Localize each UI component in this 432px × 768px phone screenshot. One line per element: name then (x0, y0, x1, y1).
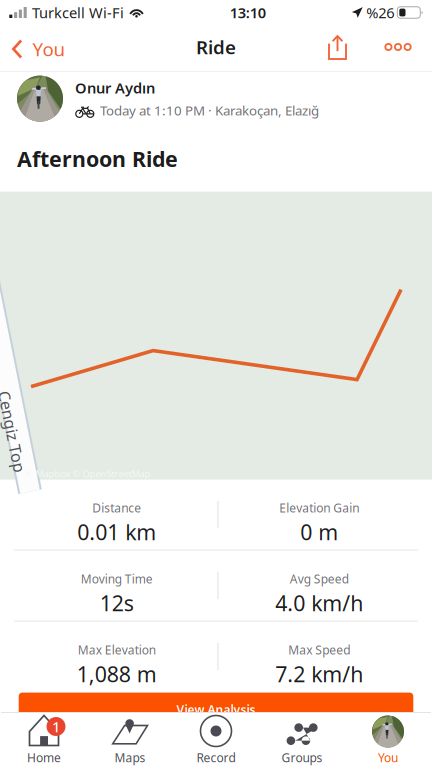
staticText: 13:10 (230, 3, 266, 22)
staticText: Cengiz Top (0, 421, 53, 442)
staticText: Onur Aydın (75, 78, 155, 97)
staticText: Maps (114, 749, 145, 765)
button[interactable]: More options (376, 24, 420, 70)
button[interactable]: You (0, 26, 75, 72)
staticText: Groups (281, 749, 322, 765)
staticText: Moving Time (81, 571, 153, 587)
staticText: 7.2 km/h (275, 660, 363, 688)
staticText: Ride (196, 35, 236, 59)
staticText: Today at 1:10 PM · Karakoçan, Elazığ (100, 101, 319, 119)
staticText: 12s (100, 589, 134, 617)
staticText: 1,088 m (77, 660, 157, 688)
staticText: 0.01 km (77, 518, 156, 546)
staticText: Max Elevation (78, 642, 156, 658)
staticText: 1 (52, 717, 60, 736)
staticText: %26 (366, 3, 394, 22)
staticText: Turkcell Wi-Fi (32, 3, 124, 22)
button[interactable]: Record (173, 712, 259, 768)
staticText: Distance (92, 500, 141, 516)
button[interactable]: Maps (87, 712, 173, 768)
button[interactable]: View Analysis (19, 693, 413, 735)
staticText: View Analysis (176, 702, 255, 717)
staticText: Afternoon Ride (17, 144, 178, 173)
staticText: Home (27, 749, 61, 765)
staticText: Avg Speed (290, 571, 349, 587)
button[interactable]: Groups (259, 712, 345, 768)
staticText: Elevation Gain (279, 500, 359, 516)
staticText: Record (196, 749, 235, 765)
staticText: You (32, 37, 65, 61)
staticText: Max Speed (288, 642, 350, 658)
button[interactable]: You (345, 712, 431, 768)
staticText: 0 m (300, 518, 338, 546)
button[interactable]: 1 (1, 712, 87, 768)
staticText: 4.0 km/h (275, 589, 363, 617)
button[interactable]: Share (316, 24, 359, 70)
staticText: © Mapbox © OpenStreetMap (25, 467, 150, 480)
staticText: You (378, 749, 398, 765)
